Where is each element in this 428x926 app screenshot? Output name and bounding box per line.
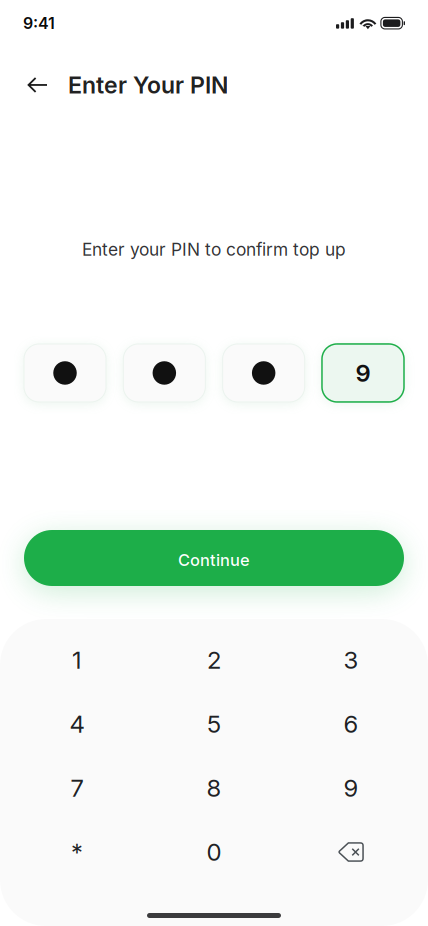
staticText: 9 (343, 773, 358, 802)
button[interactable]: PIN digit entered (123, 344, 205, 402)
button[interactable]: 3 (282, 628, 419, 692)
staticText: 9 (355, 358, 370, 387)
button[interactable]: 5 (145, 692, 282, 756)
staticText: Enter Your PIN (68, 71, 228, 99)
staticText: 8 (206, 773, 221, 802)
button[interactable]: * (8, 820, 145, 884)
button[interactable]: 8 (145, 756, 282, 820)
staticText: 1 (72, 645, 82, 674)
staticText: Enter your PIN to confirm top up (82, 239, 346, 260)
staticText: 4 (69, 709, 84, 738)
button[interactable]: Continue (24, 530, 404, 586)
staticText: 5 (207, 709, 221, 738)
button[interactable]: PIN digit entered (24, 344, 106, 402)
button[interactable]: PIN digit 9 (322, 344, 404, 402)
staticText: * (71, 837, 83, 866)
button[interactable]: Delete (282, 820, 419, 884)
button[interactable]: 6 (282, 692, 419, 756)
staticText: 3 (343, 645, 358, 674)
button[interactable]: PIN digit entered (223, 344, 305, 402)
button[interactable]: 0 (145, 820, 282, 884)
staticText: 9:41 (23, 13, 55, 33)
button[interactable]: Back (0, 62, 68, 108)
staticText: 2 (207, 645, 221, 674)
staticText: 6 (343, 709, 358, 738)
button[interactable]: 4 (8, 692, 145, 756)
staticText: 0 (206, 837, 221, 866)
staticText: Continue (178, 550, 250, 570)
staticText: 7 (70, 773, 83, 802)
button[interactable]: 1 (8, 628, 145, 692)
button[interactable]: 2 (145, 628, 282, 692)
button[interactable]: 9 (282, 756, 419, 820)
button[interactable]: 7 (8, 756, 145, 820)
